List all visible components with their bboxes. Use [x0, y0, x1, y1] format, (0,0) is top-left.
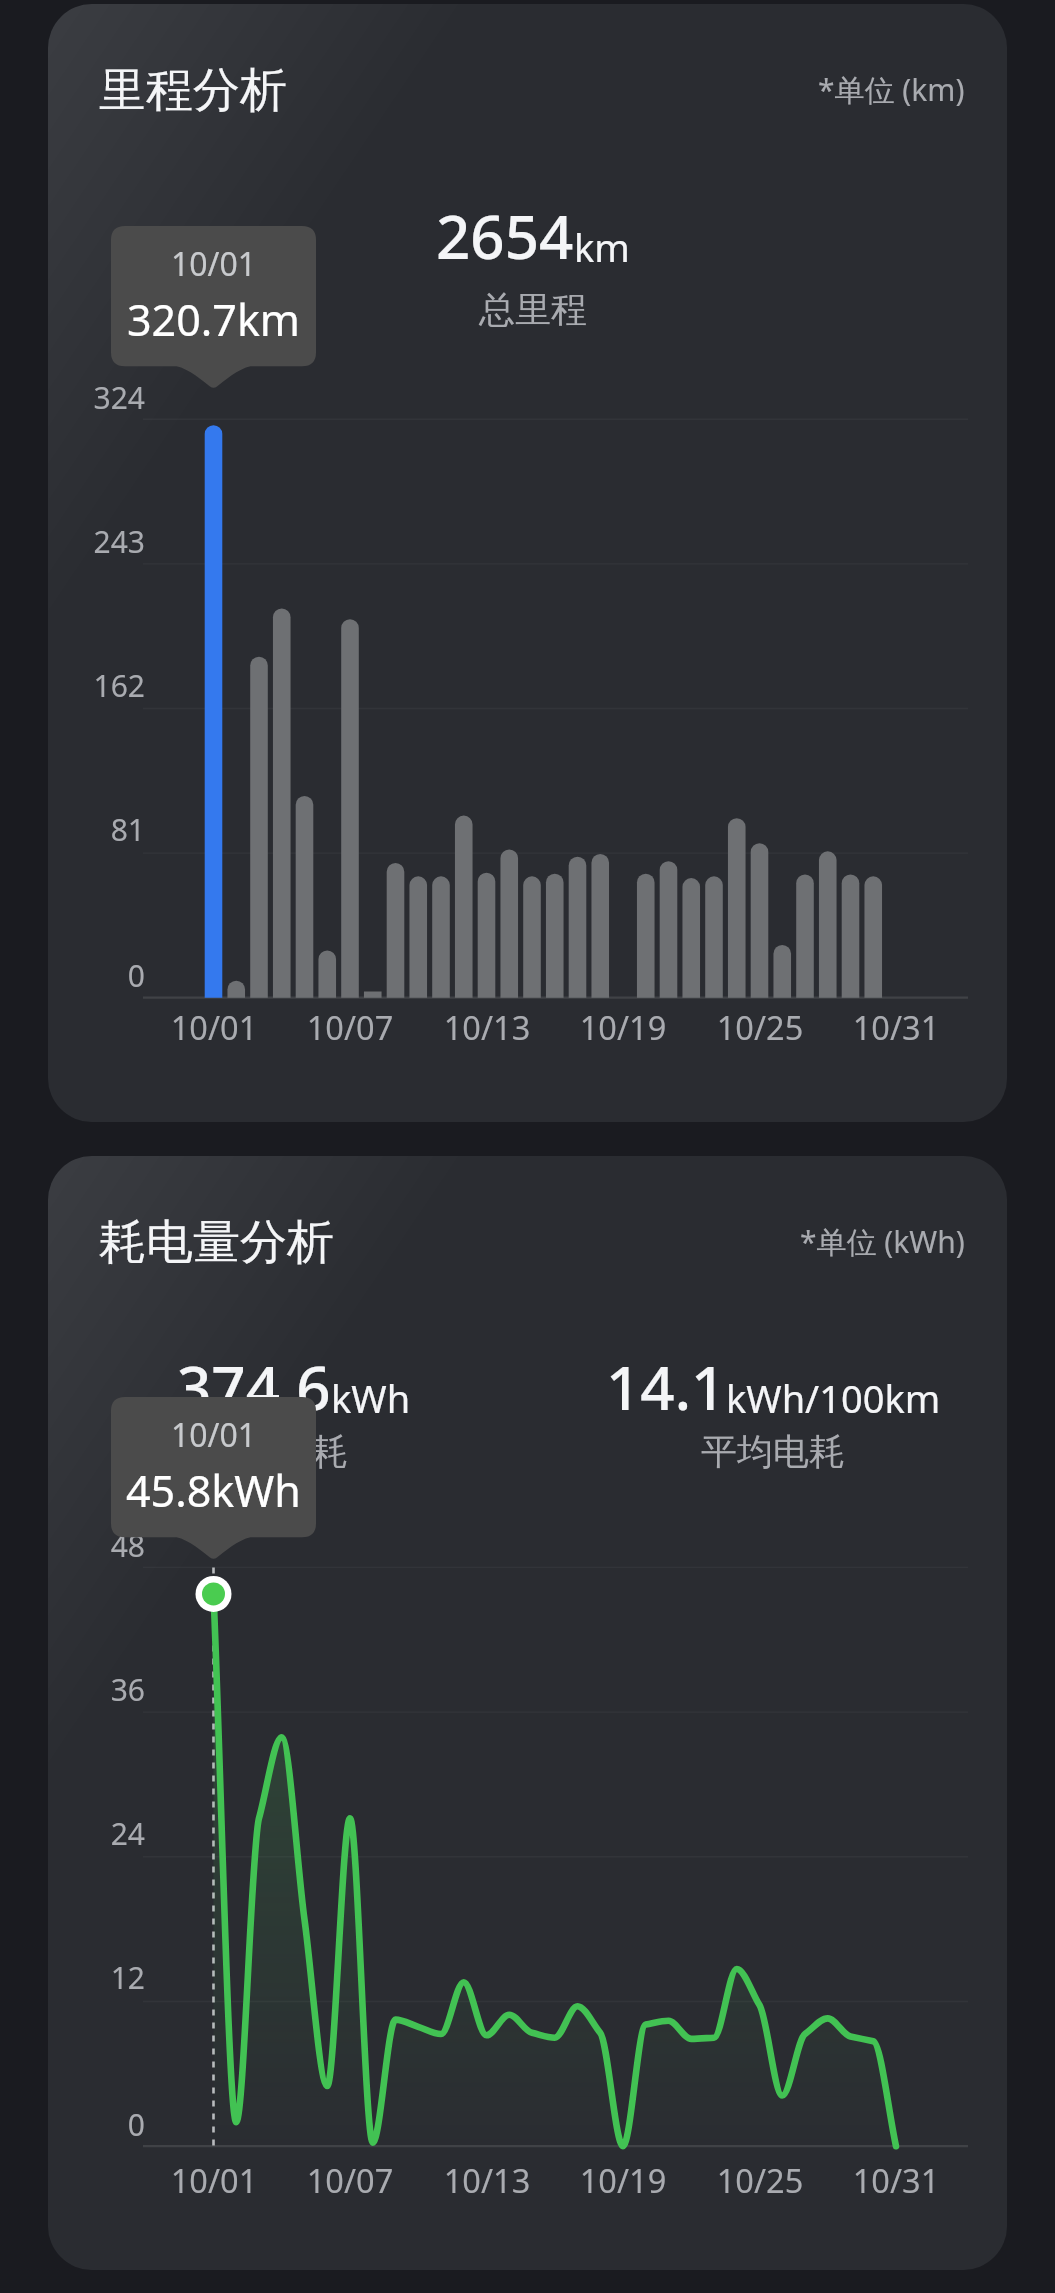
staticText: kWh — [331, 1372, 411, 1424]
staticText: 10/25 — [670, 2158, 850, 2202]
staticText: 10/01 — [124, 1005, 304, 1049]
staticText: 总里程 — [479, 287, 587, 332]
staticText: 10/13 — [397, 2158, 577, 2202]
staticText: 里程分析 — [99, 61, 287, 120]
staticText: 10/31 — [806, 2158, 986, 2202]
staticText: 10/13 — [397, 1005, 577, 1049]
staticText: 平均电耗 — [701, 1429, 845, 1474]
staticText: 总电耗 — [240, 1429, 348, 1474]
staticText: 81 — [48, 809, 145, 850]
staticText: *单位 (kWh) — [800, 1221, 965, 1262]
staticText: 48 — [48, 1525, 145, 1566]
staticText: 324 — [48, 377, 145, 418]
staticText: 2654 — [436, 195, 574, 277]
staticText: 24 — [48, 1813, 145, 1854]
staticText: kWh/100km — [726, 1372, 941, 1424]
staticText: 0 — [48, 2104, 145, 2145]
staticText: 10/01 — [124, 2158, 304, 2202]
staticText: 162 — [48, 665, 145, 706]
staticText: 10/01 — [171, 242, 257, 286]
staticText: 10/31 — [806, 1005, 986, 1049]
staticText: 374.6 — [177, 1346, 331, 1428]
staticText: 36 — [48, 1669, 145, 1710]
staticText: 耗电量分析 — [99, 1213, 334, 1272]
staticText: 10/25 — [670, 1005, 850, 1049]
staticText: 320.7km — [127, 290, 301, 349]
staticText: *单位 (km) — [818, 69, 965, 110]
staticText: 45.8kWh — [126, 1461, 301, 1520]
staticText: 10/07 — [260, 1005, 440, 1049]
staticText: 10/01 — [171, 1413, 257, 1457]
button[interactable]: 耗电量分析图表 — [48, 1156, 1007, 2270]
button[interactable]: 里程分析图表 — [48, 4, 1007, 1122]
staticText: 0 — [48, 955, 145, 996]
staticText: km — [574, 221, 630, 273]
staticText: 10/19 — [533, 2158, 713, 2202]
staticText: 10/19 — [533, 1005, 713, 1049]
staticText: 10/07 — [260, 2158, 440, 2202]
staticText: 14.1 — [606, 1346, 726, 1428]
staticText: 243 — [48, 521, 145, 562]
staticText: 12 — [48, 1957, 145, 1998]
